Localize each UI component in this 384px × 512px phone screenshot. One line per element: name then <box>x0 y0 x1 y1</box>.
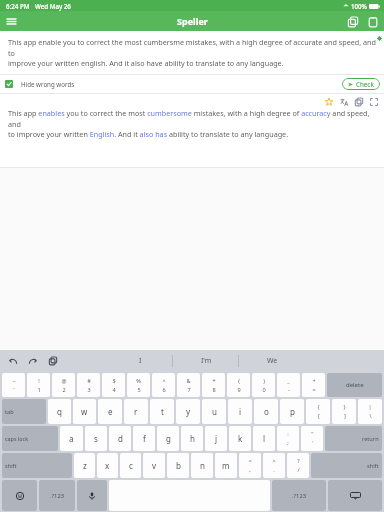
button[interactable]: } <box>332 399 356 424</box>
staticText: q <box>57 406 62 417</box>
button[interactable]: m <box>215 453 237 478</box>
button[interactable]: shift <box>311 453 382 478</box>
button[interactable]: Paste <box>46 354 60 368</box>
button[interactable]: Favorite <box>323 96 335 108</box>
button[interactable]: s <box>85 426 107 451</box>
button[interactable]: a <box>60 426 83 451</box>
button[interactable]: ^ <box>152 373 175 397</box>
button[interactable]: return <box>325 426 382 451</box>
button[interactable]: w <box>73 399 96 424</box>
button[interactable]: f <box>133 426 155 451</box>
button[interactable]: caps lock <box>2 426 58 451</box>
button[interactable]: Check <box>342 78 380 90</box>
button[interactable]: < <box>239 453 261 478</box>
button[interactable]: .?123 <box>39 480 75 511</box>
button[interactable]: & <box>177 373 200 397</box>
button[interactable]: c <box>120 453 141 478</box>
button[interactable]: Undo <box>6 354 20 368</box>
button[interactable]: .?123 <box>272 480 326 511</box>
button[interactable]: _ <box>277 373 300 397</box>
staticText: < <box>248 457 252 465</box>
button[interactable]: Paste <box>364 13 381 30</box>
staticText: r <box>134 406 138 417</box>
button[interactable]: Emoji <box>2 480 37 511</box>
button[interactable]: Copy <box>344 13 361 30</box>
staticText: 5 <box>137 386 141 394</box>
button[interactable]: k <box>229 426 251 451</box>
button[interactable]: g <box>157 426 179 451</box>
staticText: l <box>263 433 266 444</box>
staticText: y <box>186 406 191 417</box>
button[interactable]: e <box>98 399 122 424</box>
button[interactable]: We <box>239 350 305 372</box>
button[interactable]: Menu <box>4 14 18 28</box>
button[interactable]: " <box>301 426 323 451</box>
button[interactable]: * <box>202 373 225 397</box>
button[interactable]: ) <box>252 373 275 397</box>
button[interactable]: $ <box>102 373 125 397</box>
button[interactable]: tab <box>2 399 46 424</box>
button[interactable]: q <box>48 399 71 424</box>
staticText: ^ <box>162 377 166 385</box>
button[interactable]: b <box>167 453 189 478</box>
staticText: 0 <box>262 386 266 394</box>
button[interactable]: I <box>108 350 173 372</box>
button[interactable]: @ <box>52 373 75 397</box>
button[interactable]: d <box>109 426 131 451</box>
staticText: g <box>166 433 171 444</box>
button[interactable]: Voice input <box>77 480 107 511</box>
button[interactable]: Hide keyboard <box>328 480 382 511</box>
staticText: ( <box>238 377 240 385</box>
button[interactable]: r <box>124 399 148 424</box>
button[interactable]: h <box>181 426 203 451</box>
button[interactable]: x <box>97 453 118 478</box>
button[interactable]: { <box>306 399 330 424</box>
staticText: + <box>312 377 316 385</box>
staticText: p <box>290 406 295 417</box>
staticText: : <box>287 430 289 438</box>
staticText: ] <box>344 412 346 420</box>
button[interactable]: n <box>191 453 213 478</box>
staticText: \ <box>369 412 372 420</box>
button[interactable]: delete <box>327 373 382 397</box>
button[interactable]: + <box>302 373 325 397</box>
button[interactable]: ! <box>27 373 50 397</box>
button[interactable]: i <box>228 399 252 424</box>
button[interactable]: | <box>358 399 382 424</box>
staticText: shift <box>367 462 379 470</box>
button[interactable]: y <box>176 399 200 424</box>
button[interactable]: v <box>143 453 165 478</box>
button[interactable]: # <box>77 373 100 397</box>
staticText: k <box>238 433 243 444</box>
button[interactable]: Copy <box>353 96 365 108</box>
button[interactable]: ? <box>287 453 309 478</box>
button[interactable]: t <box>150 399 174 424</box>
button[interactable]: u <box>202 399 226 424</box>
button[interactable]: : <box>277 426 299 451</box>
button[interactable]: ( <box>227 373 250 397</box>
staticText: ' <box>312 439 314 447</box>
button[interactable]: l <box>253 426 275 451</box>
button[interactable]: z <box>74 453 95 478</box>
button[interactable]: I'm <box>173 350 239 372</box>
staticText: 2 <box>62 386 66 394</box>
button[interactable]: ~ <box>2 373 25 397</box>
button[interactable]: j <box>205 426 227 451</box>
button[interactable]: p <box>280 399 304 424</box>
button[interactable]: Translate <box>338 96 350 108</box>
staticText: .?123 <box>50 492 65 500</box>
staticText: e <box>108 406 113 417</box>
button[interactable]: Redo <box>26 354 40 368</box>
button[interactable]: Expand <box>368 96 380 108</box>
staticText: z <box>83 460 87 471</box>
staticText: { <box>317 403 320 411</box>
staticText: improve your written english. And it als… <box>8 58 284 68</box>
button[interactable]: Hide wrong words <box>5 80 75 88</box>
staticText: & <box>186 377 191 385</box>
button[interactable]: > <box>263 453 285 478</box>
button[interactable]: % <box>127 373 150 397</box>
button[interactable]: shift <box>2 453 72 478</box>
staticText: h <box>190 433 195 444</box>
button[interactable]: o <box>254 399 278 424</box>
